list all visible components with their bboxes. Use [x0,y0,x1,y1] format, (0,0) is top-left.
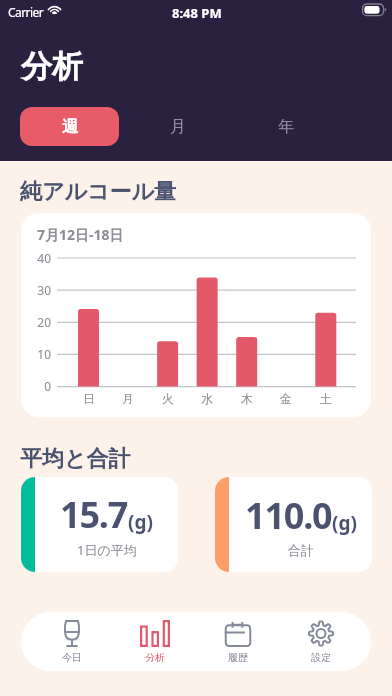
staticText: 15.7 [60,490,128,539]
staticText: 年 [278,117,294,137]
staticText: 7月12日-18日 [37,225,124,244]
staticText: 履歴 [228,651,248,664]
button[interactable]: 履歴 [196,612,279,671]
staticText: 10 [24,346,51,362]
button[interactable]: 今日 [30,612,113,671]
staticText: 40 [24,250,51,266]
button[interactable]: 月 [128,107,227,146]
staticText: 平均と合計 [20,445,131,473]
staticText: 週 [62,117,78,137]
staticText: 8:48 PM [172,4,222,22]
staticText: 火 [148,391,188,406]
staticText: 30 [24,282,51,298]
staticText: 0 [24,378,51,394]
staticText: 月 [108,391,148,406]
staticText: 純アルコール量 [20,178,177,206]
button[interactable]: 110.0 [215,477,372,572]
staticText: 土 [306,391,346,406]
staticText: 20 [24,314,51,330]
staticText: 金 [266,391,306,406]
staticText: 110.0 [245,491,332,540]
staticText: 今日 [62,651,82,664]
staticText: (g) [332,510,357,536]
staticText: 合計 [288,542,314,558]
staticText: (g) [128,509,153,535]
button[interactable]: 週 [20,107,119,146]
staticText: Carrier [8,4,44,20]
staticText: 設定 [311,651,331,664]
staticText: 水 [187,391,227,406]
button[interactable]: 年 [236,107,335,146]
staticText: 1日の平均 [77,541,137,559]
staticText: 分析 [21,47,83,86]
button[interactable]: 15.7 [21,477,178,572]
staticText: 月 [170,117,186,137]
button[interactable]: 設定 [279,612,362,671]
staticText: 木 [227,391,267,406]
button[interactable]: 分析 [113,612,196,671]
staticText: 日 [69,391,109,406]
staticText: 分析 [145,651,165,664]
